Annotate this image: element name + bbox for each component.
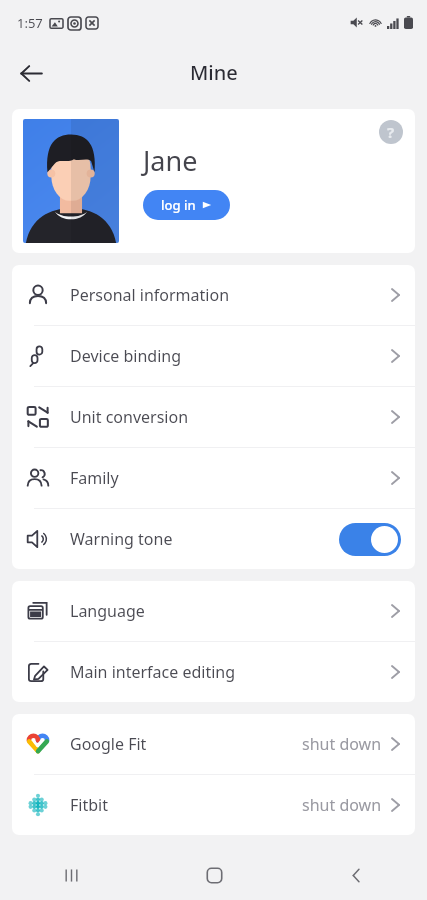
button[interactable]: Help: [379, 120, 403, 144]
button[interactable]: Language: [12, 581, 415, 641]
button[interactable]: Google Fit: [12, 714, 415, 774]
staticText: Device binding: [70, 345, 182, 367]
staticText: shut down: [302, 733, 382, 755]
staticText: Language: [70, 600, 145, 622]
staticText: log in: [161, 196, 196, 214]
staticText: Jane: [143, 142, 198, 179]
staticText: shut down: [302, 794, 382, 816]
button[interactable]: Home: [143, 850, 285, 900]
button[interactable]: Main interface editing: [12, 642, 415, 702]
staticText: Personal information: [70, 284, 230, 306]
button[interactable]: Device binding: [12, 326, 415, 386]
button[interactable]: Warning tone toggle: [339, 523, 401, 556]
button[interactable]: log in: [143, 190, 230, 220]
staticText: Family: [70, 467, 119, 489]
button[interactable]: Family: [12, 448, 415, 508]
button[interactable]: Fitbit: [12, 775, 415, 835]
staticText: Unit conversion: [70, 406, 189, 428]
staticText: Google Fit: [70, 733, 147, 755]
button[interactable]: Personal information: [12, 265, 415, 325]
staticText: Mine: [190, 59, 238, 86]
staticText: 1:57: [17, 14, 43, 32]
button[interactable]: Back: [8, 50, 54, 96]
button[interactable]: Warning tone: [12, 509, 415, 569]
button[interactable]: Unit conversion: [12, 387, 415, 447]
staticText: Fitbit: [70, 794, 108, 816]
button[interactable]: Back: [285, 850, 427, 900]
staticText: Warning tone: [70, 528, 173, 550]
staticText: Main interface editing: [70, 661, 236, 683]
staticText: ?: [387, 122, 395, 142]
button[interactable]: Avatar: [23, 119, 119, 243]
button[interactable]: Recents: [0, 850, 143, 900]
